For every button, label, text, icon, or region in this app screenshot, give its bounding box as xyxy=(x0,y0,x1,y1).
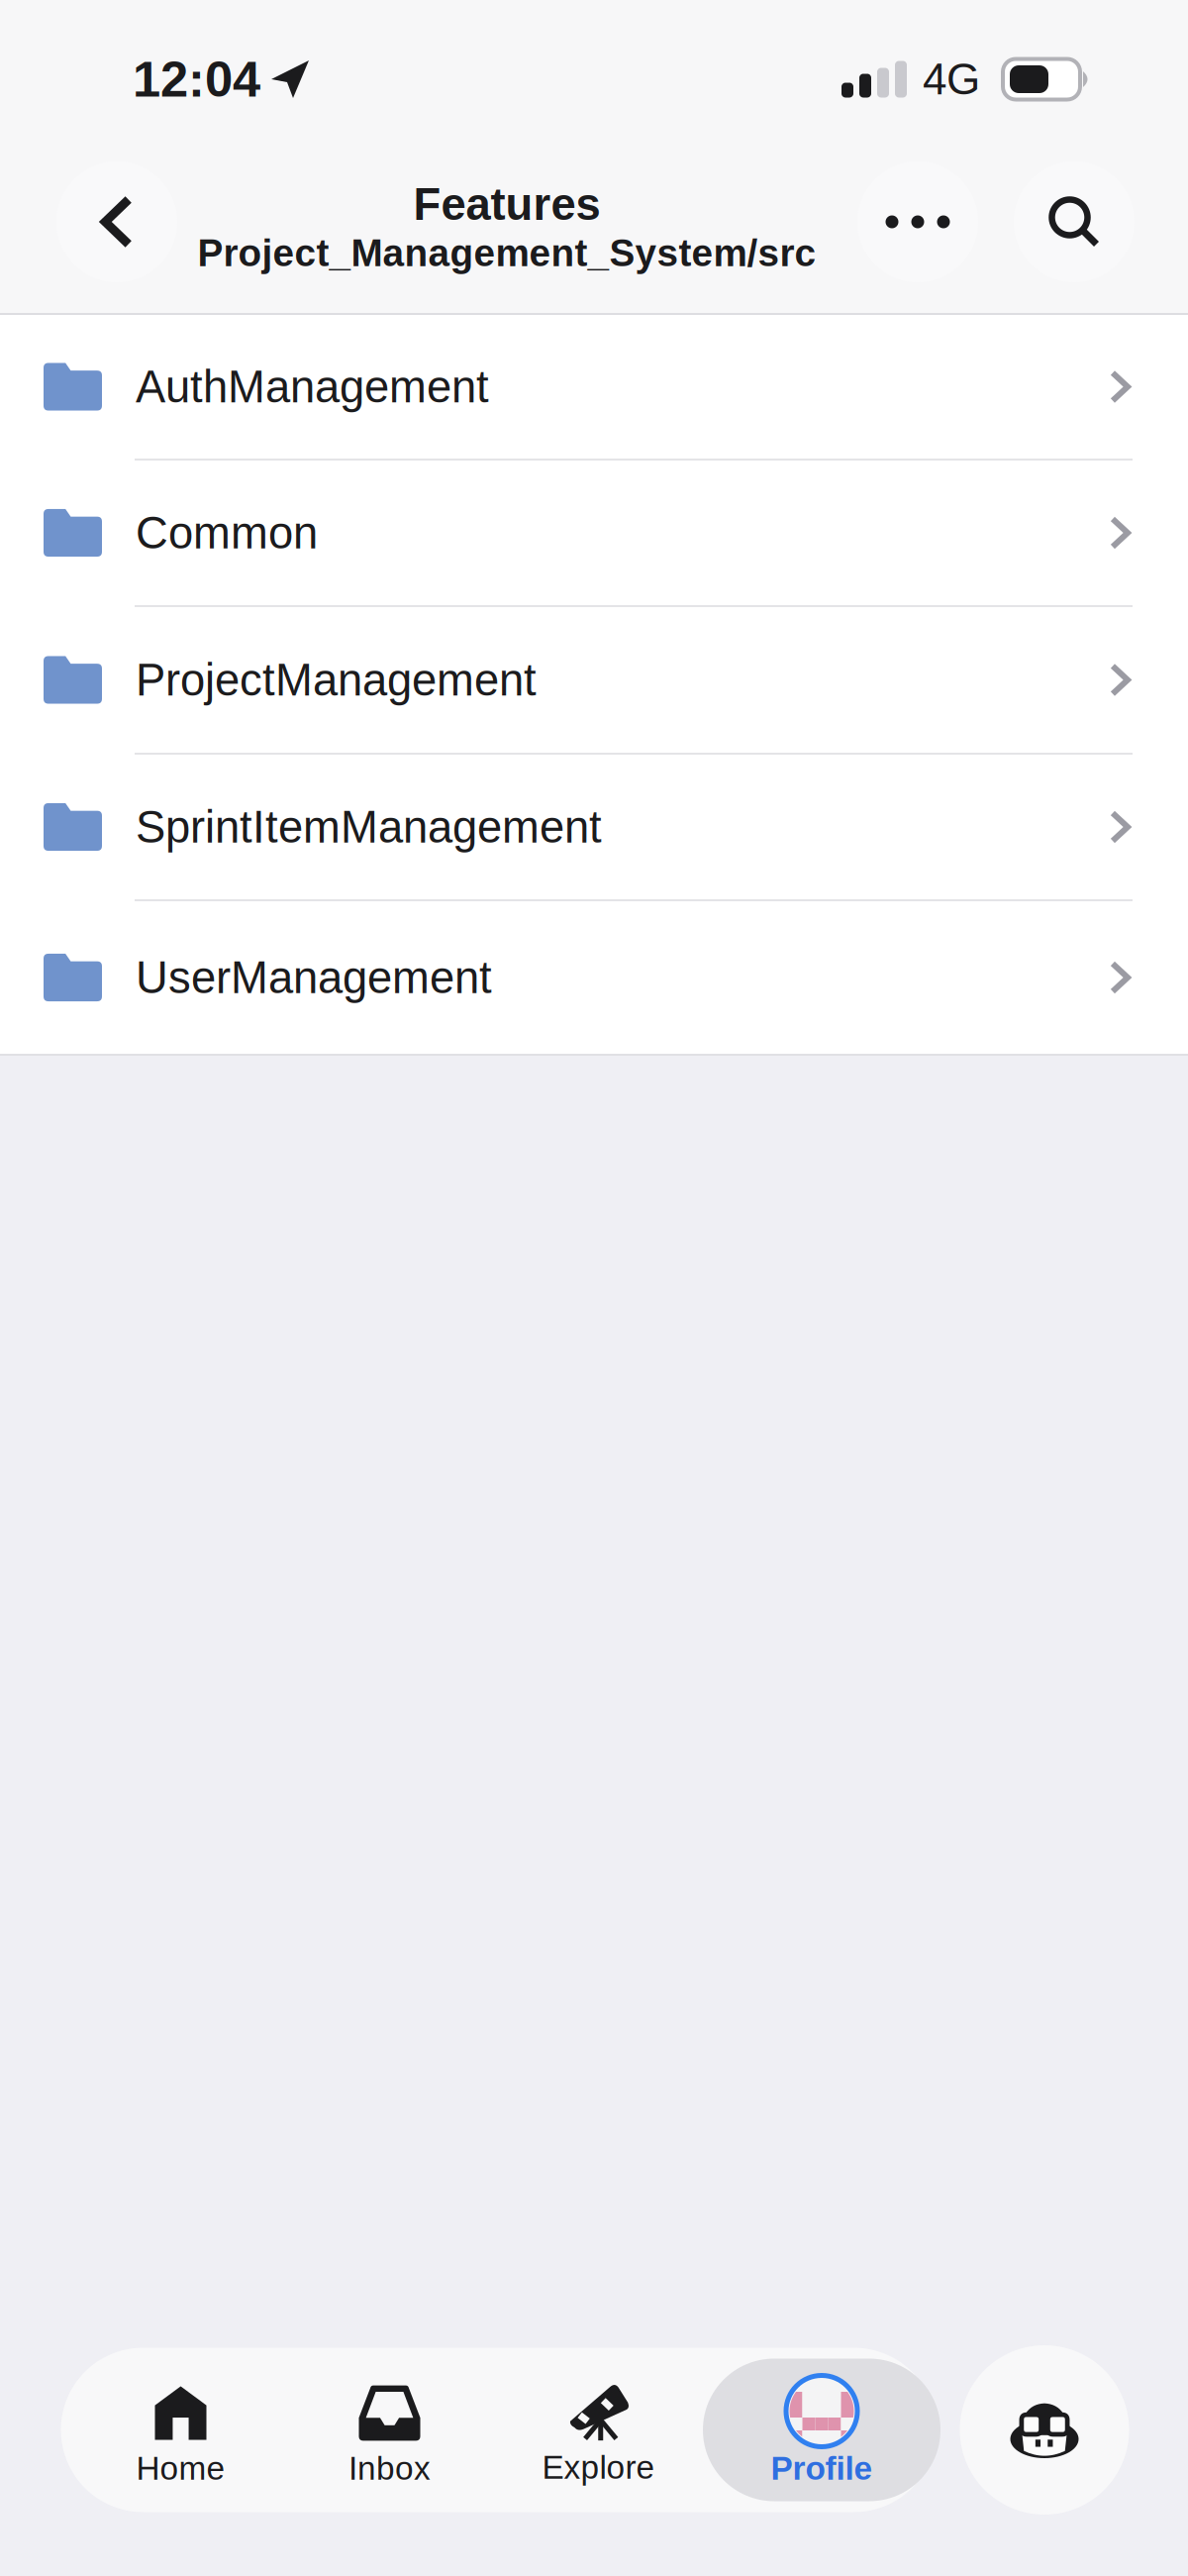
staticText: 12:04 xyxy=(133,51,260,107)
staticText: UserManagement xyxy=(136,952,492,1003)
staticText: Explore xyxy=(542,2449,655,2486)
staticText: Profile xyxy=(771,2450,873,2487)
button[interactable]: ProjectManagement xyxy=(0,607,1188,755)
button[interactable]: SprintItemManagement xyxy=(0,755,1188,901)
staticText: AuthManagement xyxy=(136,362,489,412)
button[interactable]: AuthManagement xyxy=(0,315,1188,461)
staticText: Inbox xyxy=(348,2450,431,2487)
staticText: Home xyxy=(136,2450,225,2487)
staticText: 4G xyxy=(923,55,980,104)
button[interactable]: UserManagement xyxy=(0,901,1188,1054)
button[interactable]: Back xyxy=(56,161,177,282)
button[interactable]: Assistant xyxy=(960,2345,1129,2515)
button[interactable]: More options xyxy=(857,161,978,282)
button[interactable]: Inbox xyxy=(285,2359,494,2501)
button[interactable]: Search xyxy=(1014,161,1135,282)
staticText: Features xyxy=(413,179,600,229)
button[interactable]: Common xyxy=(0,461,1188,607)
button[interactable]: Explore xyxy=(494,2359,703,2501)
staticText: Common xyxy=(136,508,318,558)
button[interactable]: Home xyxy=(76,2359,285,2501)
staticText: ProjectManagement xyxy=(136,655,537,705)
button[interactable]: Profile xyxy=(703,2359,940,2501)
staticText: SprintItemManagement xyxy=(136,802,602,852)
staticText: Project_Management_System/src xyxy=(198,231,816,274)
